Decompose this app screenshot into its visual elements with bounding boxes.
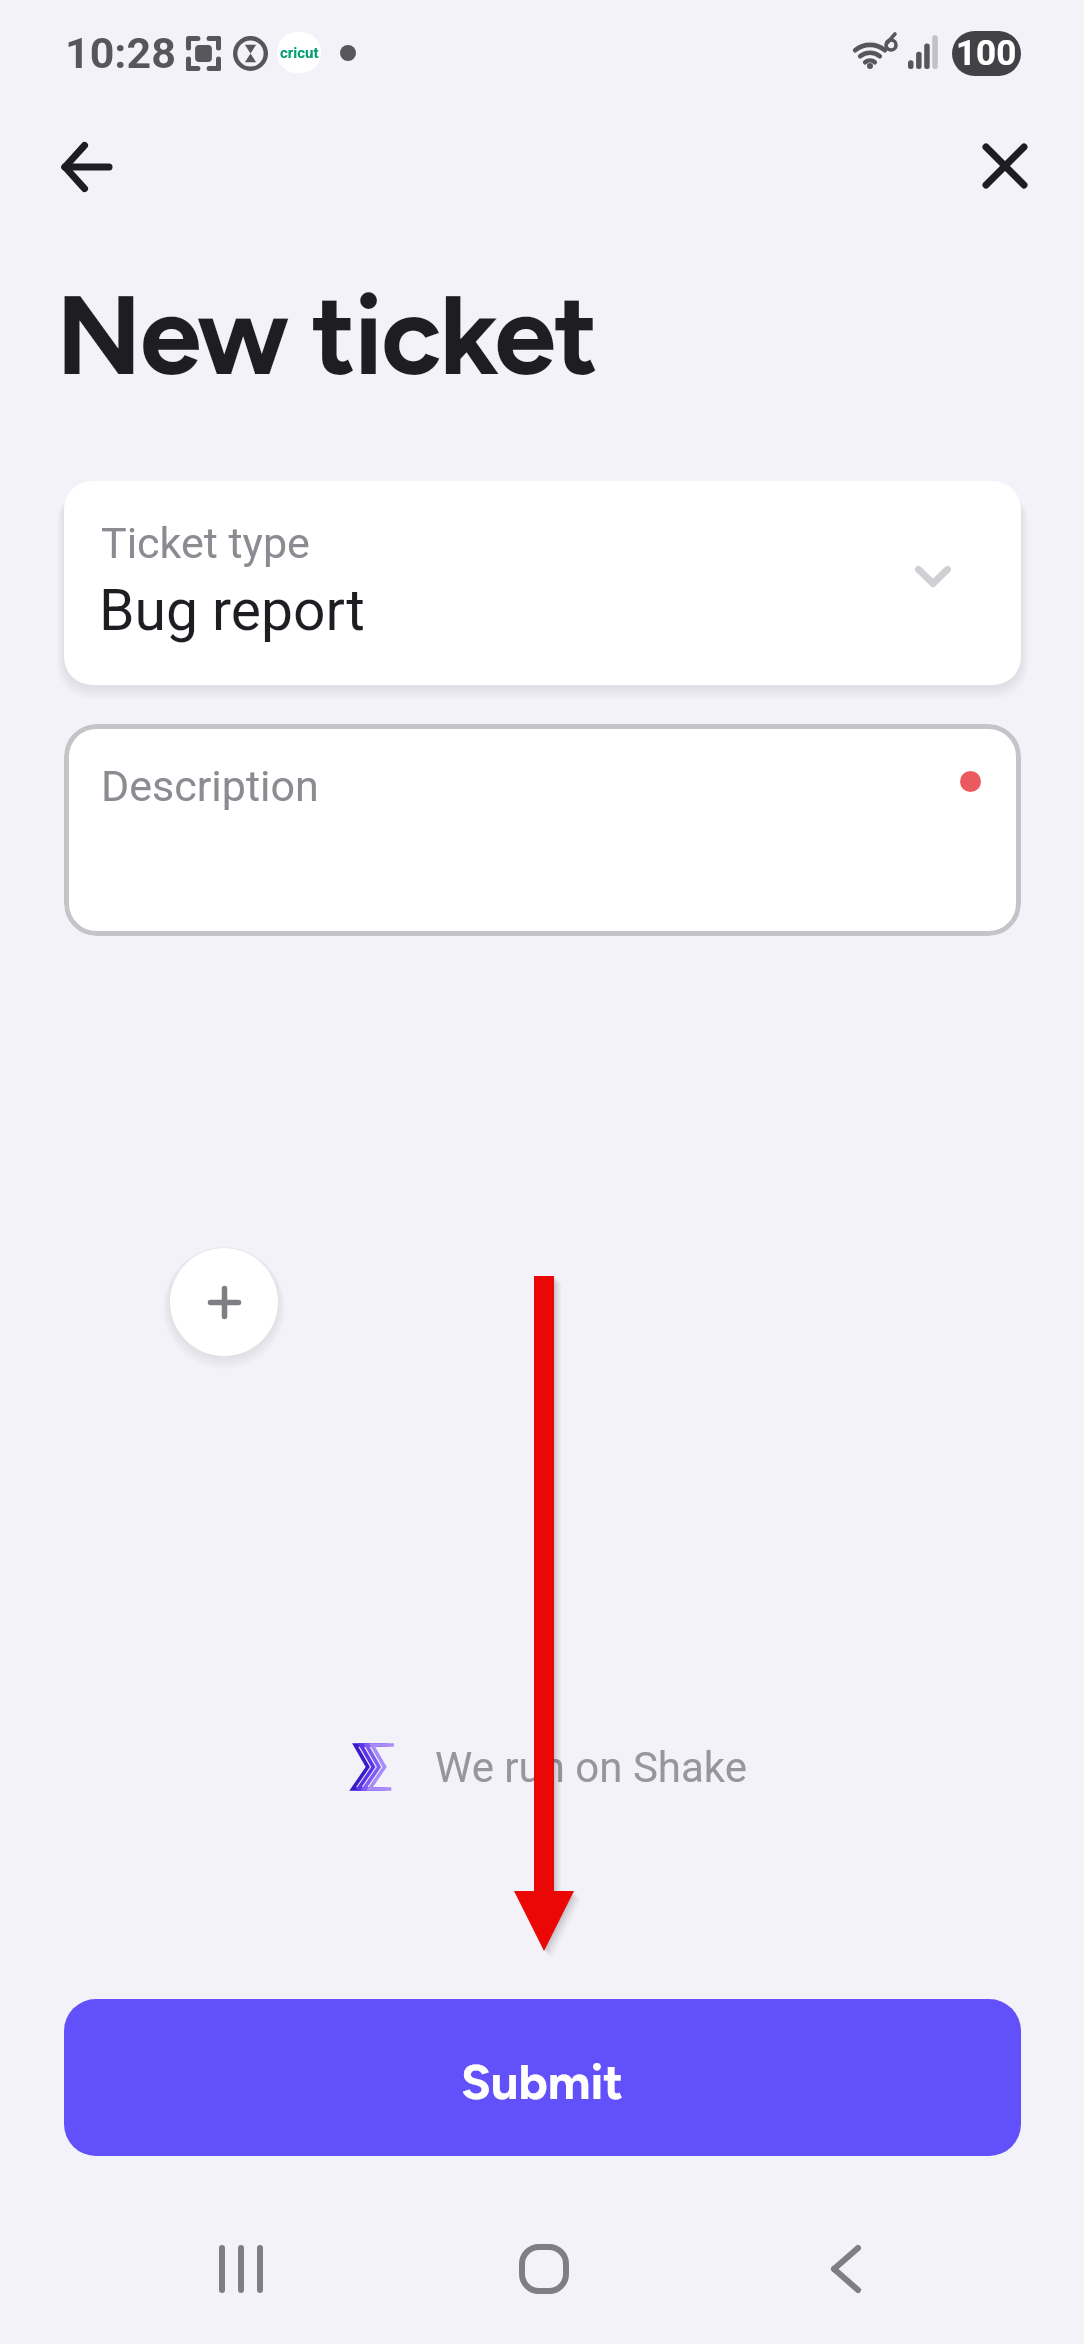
button[interactable]: Submit: [64, 1999, 1021, 2156]
staticText: We run on Shake: [435, 1743, 747, 1792]
button[interactable]: Description: [64, 724, 1021, 936]
staticText: New ticket: [56, 269, 597, 402]
button[interactable]: Ticket type: [64, 481, 1021, 685]
staticText: cricut: [280, 44, 319, 62]
staticText: Description: [101, 761, 319, 811]
button[interactable]: Add attachment: [170, 1248, 278, 1356]
button[interactable]: Close: [957, 118, 1053, 214]
button[interactable]: Back: [766, 2207, 926, 2331]
button[interactable]: Back: [38, 119, 134, 215]
staticText: Submit: [461, 2052, 624, 2111]
staticText: Bug report: [99, 577, 365, 644]
staticText: 10:28: [65, 28, 176, 78]
staticText: 100: [956, 33, 1017, 74]
staticText: Ticket type: [101, 518, 310, 568]
button[interactable]: Recents: [161, 2207, 321, 2331]
button[interactable]: Home: [464, 2207, 624, 2331]
